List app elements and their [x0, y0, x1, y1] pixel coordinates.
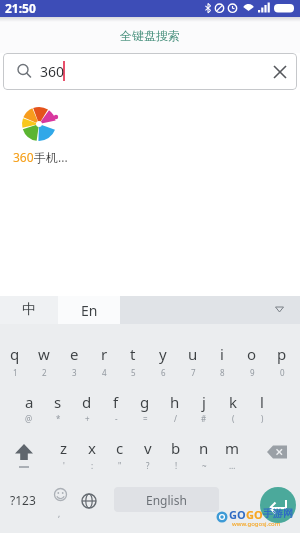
staticText: m: [225, 438, 240, 458]
staticText: y: [159, 344, 167, 364]
button[interactable]: En: [58, 296, 120, 324]
button[interactable]: v: [134, 436, 162, 460]
button[interactable]: h: [161, 390, 189, 414]
staticText: ,: [58, 508, 61, 519]
staticText: www.gogosj.com: [232, 520, 281, 528]
staticText: #: [201, 413, 207, 424]
staticText: b: [171, 438, 181, 458]
button[interactable]: s: [44, 390, 72, 414]
button[interactable]: m: [218, 436, 246, 460]
staticText: ": [118, 460, 122, 471]
staticText: GO: [229, 507, 246, 522]
staticText: 9: [250, 367, 255, 378]
button[interactable]: e: [60, 342, 88, 366]
button[interactable]: [48, 482, 74, 508]
staticText: @: [25, 413, 33, 424]
staticText: i: [220, 344, 224, 364]
staticText: ': [63, 460, 65, 471]
button[interactable]: [262, 438, 294, 466]
button[interactable]: a: [15, 390, 43, 414]
staticText: ?: [146, 460, 150, 471]
staticText: 21:50: [5, 0, 36, 16]
staticText: …: [229, 460, 236, 471]
button[interactable]: g: [131, 390, 159, 414]
button[interactable]: English: [114, 487, 219, 512]
button[interactable]: t: [119, 342, 147, 366]
staticText: GO: [246, 507, 263, 522]
button[interactable]: [76, 488, 102, 514]
staticText: v: [144, 438, 152, 458]
button[interactable]: w: [30, 342, 58, 366]
button[interactable]: [265, 57, 295, 87]
button[interactable]: f: [102, 390, 130, 414]
button[interactable]: o: [238, 342, 266, 366]
staticText: 360: [40, 62, 65, 81]
staticText: k: [229, 392, 238, 412]
button[interactable]: y: [149, 342, 177, 366]
button[interactable]: 360: [3, 53, 297, 90]
staticText: !: [175, 460, 178, 471]
staticText: +: [85, 413, 90, 424]
staticText: :: [91, 460, 94, 471]
staticText: 0: [280, 367, 285, 378]
staticText: p: [277, 344, 287, 364]
staticText: 6: [161, 367, 166, 378]
staticText: 中: [22, 301, 36, 319]
staticText: 手机...: [34, 149, 68, 165]
button[interactable]: [8, 436, 40, 470]
staticText: u: [188, 344, 198, 364]
staticText: n: [199, 438, 209, 458]
staticText: /: [174, 413, 177, 424]
staticText: *: [56, 413, 61, 424]
staticText: ): [261, 413, 264, 424]
staticText: l: [260, 392, 264, 412]
staticText: 手游网: [263, 507, 293, 520]
staticText: t: [130, 344, 136, 364]
staticText: j: [202, 392, 206, 412]
staticText: x: [88, 438, 96, 458]
staticText: 7: [191, 367, 196, 378]
staticText: English: [146, 492, 187, 508]
staticText: ?123: [10, 492, 36, 508]
button[interactable]: u: [179, 342, 207, 366]
staticText: -: [115, 413, 118, 424]
button[interactable]: l: [248, 390, 276, 414]
staticText: 360: [13, 149, 34, 165]
button[interactable]: ?123: [1, 488, 45, 512]
staticText: 4: [102, 367, 107, 378]
button[interactable]: [266, 296, 294, 324]
button[interactable]: [260, 487, 296, 523]
staticText: r: [101, 344, 108, 364]
button[interactable]: 360: [10, 102, 74, 166]
button[interactable]: b: [162, 436, 190, 460]
staticText: g: [140, 392, 150, 412]
staticText: 1: [13, 367, 18, 378]
staticText: s: [54, 392, 62, 412]
staticText: o: [247, 344, 257, 364]
staticText: f: [113, 392, 119, 412]
staticText: a: [25, 392, 34, 412]
staticText: w: [38, 344, 50, 364]
button[interactable]: 中: [0, 296, 58, 324]
staticText: 3: [72, 367, 77, 378]
staticText: q: [10, 344, 20, 364]
button[interactable]: c: [106, 436, 134, 460]
button[interactable]: p: [268, 342, 296, 366]
button[interactable]: k: [219, 390, 247, 414]
button[interactable]: i: [208, 342, 236, 366]
staticText: (: [232, 413, 235, 424]
button[interactable]: j: [190, 390, 218, 414]
staticText: 8: [220, 367, 225, 378]
staticText: 全键盘搜索: [120, 28, 180, 43]
staticText: z: [60, 438, 68, 458]
staticText: 2: [42, 367, 47, 378]
button[interactable]: x: [78, 436, 106, 460]
button[interactable]: d: [73, 390, 101, 414]
staticText: c: [116, 438, 124, 458]
button[interactable]: n: [190, 436, 218, 460]
button[interactable]: r: [90, 342, 118, 366]
button[interactable]: q: [1, 342, 29, 366]
staticText: h: [170, 392, 180, 412]
staticText: ~: [202, 460, 207, 471]
button[interactable]: z: [50, 436, 78, 460]
